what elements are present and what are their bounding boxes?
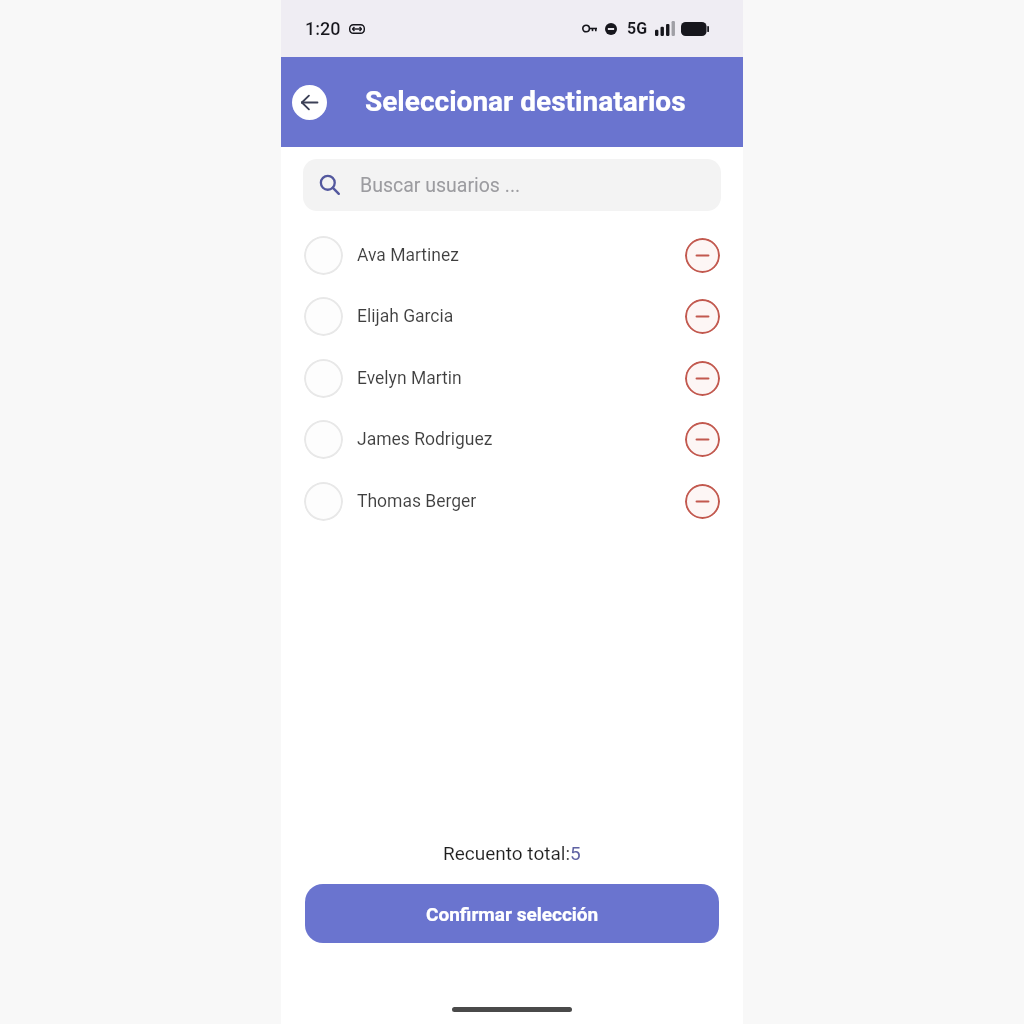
button[interactable]: Elijah Garcia [281, 286, 743, 347]
staticText: Buscar usuarios ... [360, 174, 521, 197]
staticText: Thomas Berger [357, 491, 477, 512]
staticText: 1:20 [305, 18, 341, 39]
staticText: 5G [627, 19, 648, 38]
button[interactable]: Remove Ava Martinez [685, 238, 720, 273]
staticText: Ava Martinez [357, 245, 459, 266]
staticText: Recuento total:5 [443, 842, 581, 864]
button[interactable]: Ava Martinez [281, 224, 743, 286]
button[interactable]: Remove Thomas Berger [685, 484, 720, 519]
button[interactable]: Thomas Berger [281, 470, 743, 532]
staticText: Elijah Garcia [357, 306, 454, 327]
button[interactable]: James Rodriguez [281, 409, 743, 470]
staticText: James Rodriguez [357, 429, 493, 450]
staticText: Confirmar selección [426, 903, 599, 925]
button[interactable]: Confirmar selección [305, 884, 719, 943]
button[interactable]: Evelyn Martin [281, 347, 743, 409]
button[interactable]: Remove Evelyn Martin [685, 361, 720, 396]
button[interactable]: Buscar usuarios ... [303, 159, 721, 211]
button[interactable]: Remove James Rodriguez [685, 422, 720, 457]
staticText: Seleccionar destinatarios [365, 85, 686, 118]
staticText: Evelyn Martin [357, 368, 462, 389]
button[interactable]: Back [292, 85, 327, 120]
button[interactable]: Remove Elijah Garcia [685, 299, 720, 334]
